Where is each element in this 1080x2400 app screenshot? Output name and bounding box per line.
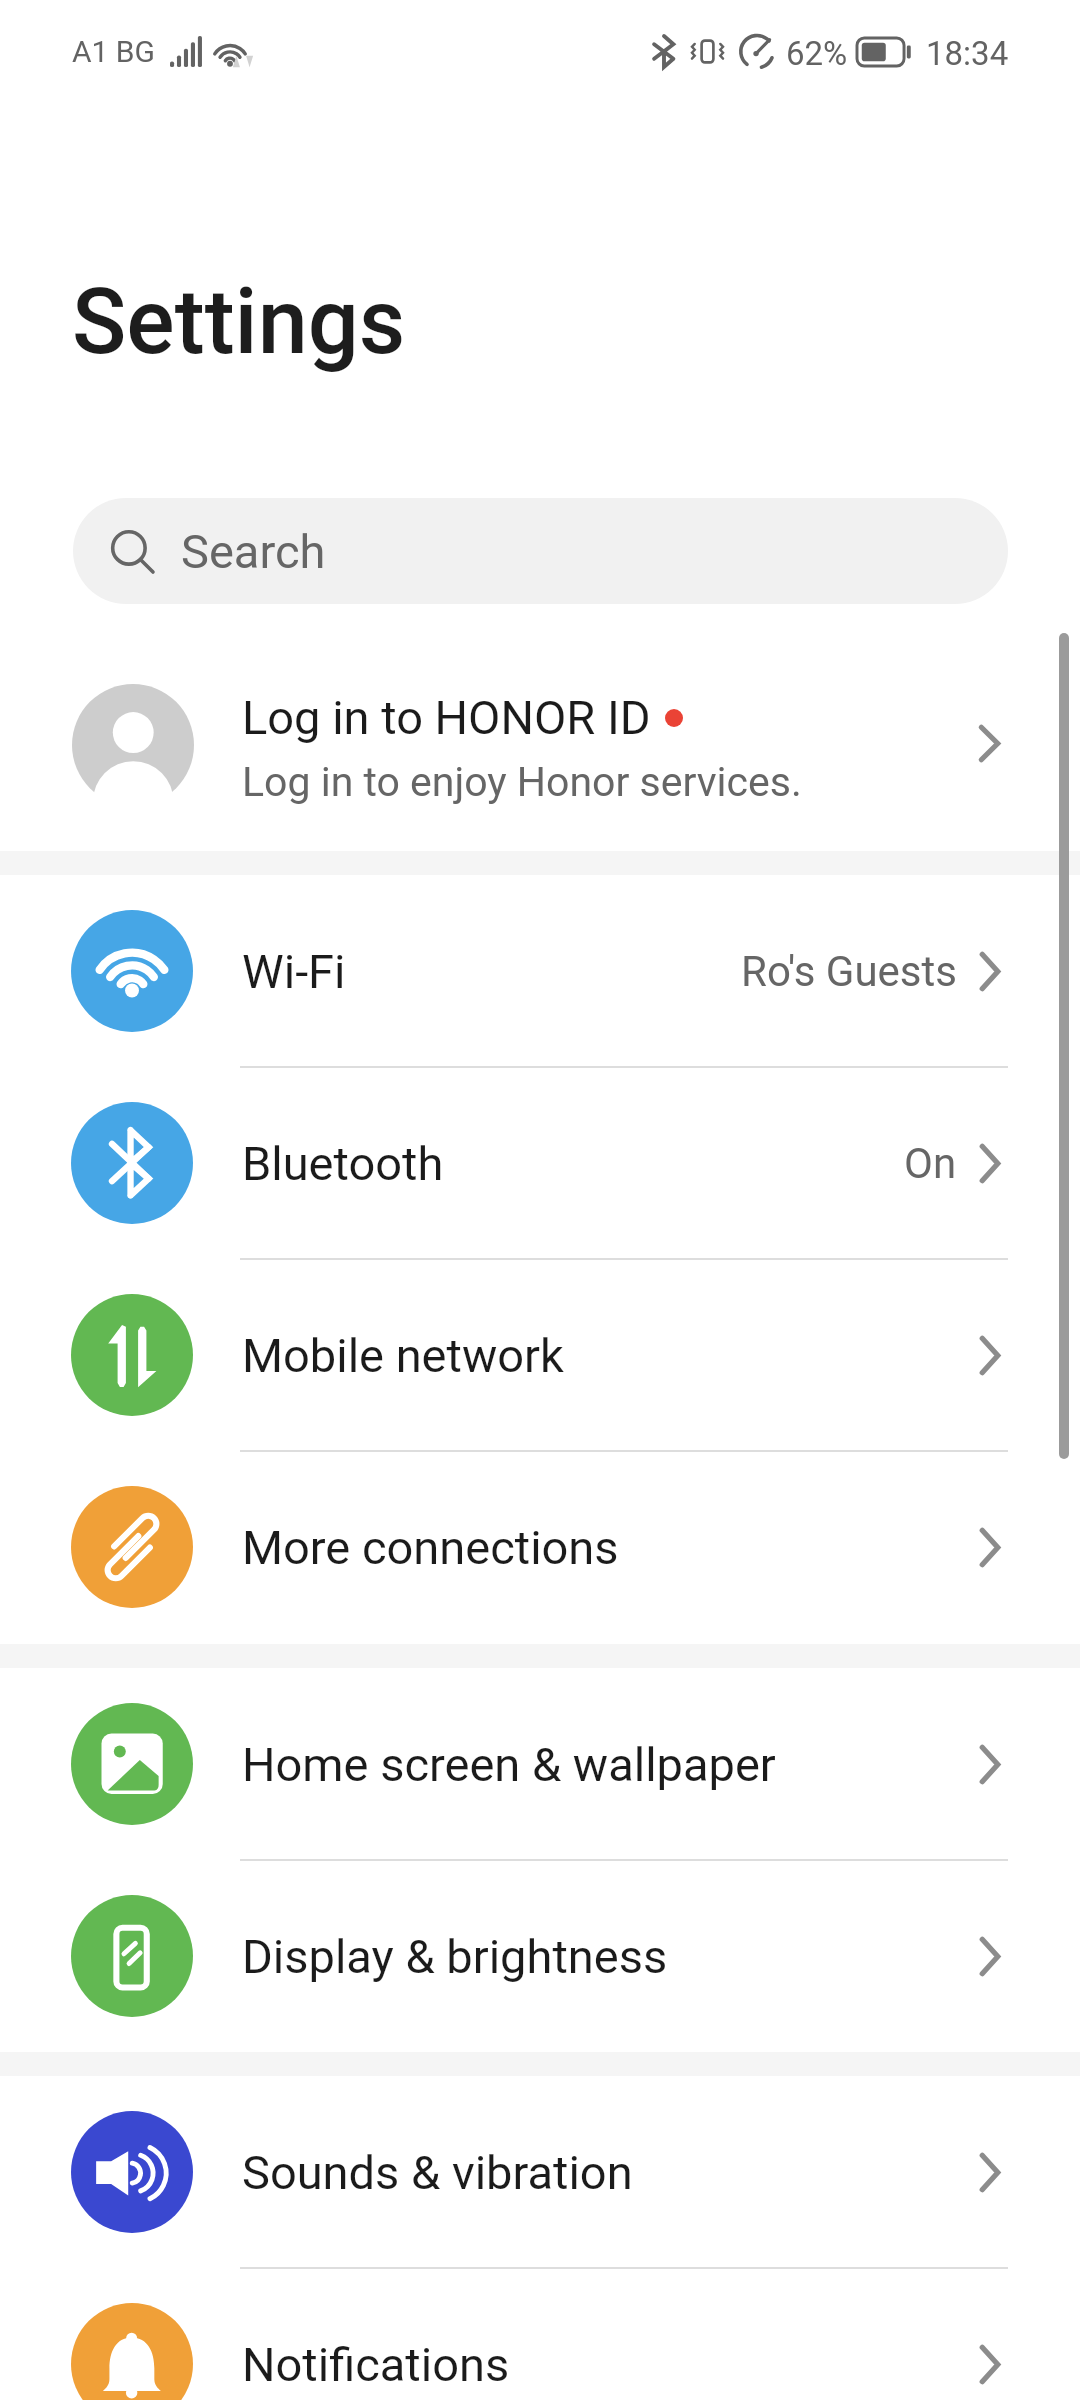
- button[interactable]: Log in to HONOR ID: [0, 644, 1080, 851]
- staticText: Mobile network: [242, 1328, 564, 1383]
- staticText: More connections: [242, 1520, 619, 1575]
- staticText: On: [904, 1139, 957, 1188]
- button[interactable]: Notifications: [0, 2268, 1080, 2400]
- staticText: Ro's Guests: [741, 947, 957, 996]
- button[interactable]: Search: [73, 498, 1008, 604]
- staticText: 62%: [786, 34, 848, 73]
- staticText: Sounds & vibration: [242, 2145, 633, 2200]
- staticText: Settings: [72, 270, 406, 375]
- staticText: 18:34: [926, 34, 1009, 73]
- staticText: Notifications: [242, 2337, 510, 2392]
- staticText: Log in to HONOR ID: [242, 690, 651, 745]
- staticText: Log in to enjoy Honor services.: [242, 758, 802, 806]
- staticText: Wi-Fi: [242, 944, 346, 999]
- button[interactable]: Home screen & wallpaper: [0, 1668, 1080, 1860]
- button[interactable]: Wi-Fi: [0, 875, 1080, 1067]
- other: Open HONOR ID sign-in: [979, 725, 1000, 762]
- staticText: A1 BG: [72, 34, 155, 69]
- staticText: Bluetooth: [242, 1136, 444, 1191]
- button[interactable]: More connections: [0, 1451, 1080, 1643]
- button[interactable]: Mobile network: [0, 1259, 1080, 1451]
- button[interactable]: Sounds & vibration: [0, 2076, 1080, 2268]
- staticText: Search: [181, 524, 326, 579]
- staticText: Display & brightness: [242, 1929, 668, 1984]
- button[interactable]: Display & brightness: [0, 1860, 1080, 2052]
- staticText: Home screen & wallpaper: [242, 1737, 776, 1792]
- button[interactable]: Bluetooth: [0, 1067, 1080, 1259]
